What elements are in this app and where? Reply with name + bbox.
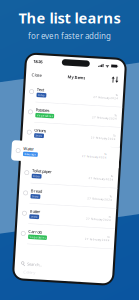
button[interactable]: Text [20,84,118,104]
staticText: Vegetables [34,115,50,119]
staticText: 27 February 2024 [89,236,114,239]
staticText: My Items [62,74,80,80]
staticText: Intro [34,197,41,200]
staticText: 27 February 2024 [89,94,114,97]
staticText: Butter [32,211,43,216]
button[interactable]: Toilet paper [20,165,118,186]
staticText: Intro [34,176,41,180]
staticText: Vegetables [34,237,50,241]
button[interactable]: Sort [105,74,114,80]
staticText: Water [22,148,33,154]
staticText: Carrots [32,231,46,236]
staticText: for even faster adding [28,30,111,41]
staticText: Celery [29,272,41,277]
staticText: Tu [103,150,106,154]
staticText: Intro [34,217,41,220]
staticText: 27 February 2024 [89,114,114,118]
staticText: Toilet paper [32,170,52,175]
staticText: Beverage [24,155,36,158]
staticText: 27 February 2024 [89,175,114,179]
button[interactable]: Water [10,143,110,164]
button[interactable]: Onions [20,125,118,145]
staticText: Intro [34,136,41,139]
button[interactable]: Bread [20,186,118,206]
staticText: Potatoes [32,109,46,114]
button[interactable]: Close [25,74,37,80]
staticText: Search... [33,264,48,269]
button[interactable]: Carrots [20,226,118,246]
staticText: 27 February 2024 [89,216,114,219]
button[interactable]: Search... [20,261,118,272]
staticText: 27 February 2024 [81,154,106,157]
staticText: 27 February 2024 [89,195,114,199]
button[interactable]: Butter [20,206,118,226]
staticText: Text [32,89,39,94]
staticText: Close [26,74,36,80]
staticText: The list learns [18,8,120,27]
staticText: Onions [32,129,44,135]
staticText: 18:26 [27,61,36,66]
staticText: 27 February 2024 [89,134,114,138]
staticText: Bread [32,190,43,196]
staticText: Intro [34,95,41,99]
staticText: Tu [111,131,114,135]
button[interactable]: Potatoes [20,104,118,125]
